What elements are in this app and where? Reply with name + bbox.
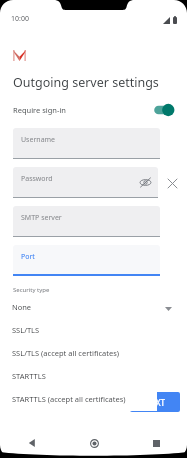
button[interactable]: SSL/TLS (accept all certificates)	[0, 341, 157, 364]
staticText: Port	[21, 252, 35, 262]
button[interactable]: Port	[13, 245, 160, 276]
staticText: 10:00	[11, 14, 29, 24]
button[interactable]: Username	[13, 128, 160, 159]
staticText: SSL/TLS (accept all certificates)	[12, 348, 119, 358]
button[interactable]: STARTTLS	[0, 364, 157, 387]
button[interactable]: SMTP server	[13, 206, 160, 237]
staticText: SSL/TLS	[12, 325, 40, 335]
button[interactable]: Home	[63, 428, 125, 458]
staticText: NEXT	[145, 397, 166, 408]
staticText: Username	[21, 135, 56, 145]
staticText: Outgoing server settings	[13, 74, 159, 91]
staticText: STARTTLS	[12, 371, 46, 381]
other: Security type dropdown	[163, 304, 173, 314]
button[interactable]: Require sign-in toggle	[152, 103, 174, 117]
staticText: Require sign-in	[13, 105, 66, 115]
button[interactable]: Clear	[164, 175, 180, 191]
button[interactable]: STARTTLS (accept all certificates)	[0, 387, 157, 410]
button[interactable]: Back	[0, 428, 63, 458]
button[interactable]: Require sign-in	[0, 99, 187, 121]
staticText: STARTTLS (accept all certificates)	[12, 394, 126, 404]
staticText: Security type	[13, 286, 50, 294]
staticText: Password	[21, 174, 53, 184]
button[interactable]: Recent apps	[125, 428, 187, 458]
button[interactable]: Hide password	[139, 176, 152, 189]
button[interactable]: Password	[13, 167, 158, 198]
button[interactable]: NEXT	[130, 392, 180, 412]
button[interactable]: None	[0, 295, 157, 318]
button[interactable]: SSL/TLS	[0, 318, 157, 341]
staticText: SMTP server	[21, 213, 62, 223]
staticText: None	[12, 302, 32, 312]
